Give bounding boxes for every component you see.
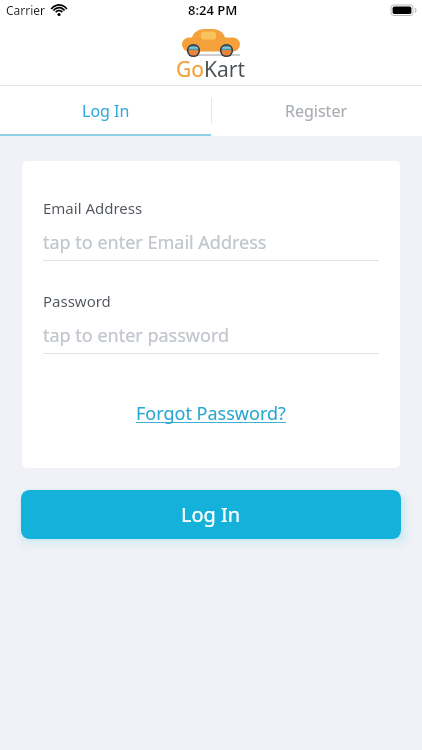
staticText: Log In [82,100,130,122]
button[interactable]: tap to enter password [43,323,230,348]
staticText: Carrier [6,2,46,18]
staticText: Email Address [43,198,143,218]
staticText: GoKart [176,55,246,82]
staticText: Register [285,100,348,122]
button[interactable]: tap to enter Email Address [43,230,267,255]
staticText: Log In [181,501,241,528]
button[interactable]: Register [211,86,422,136]
button[interactable]: Log In [0,86,211,136]
staticText: 8:24 PM [188,1,238,19]
staticText: Password [43,291,111,311]
button[interactable]: Log In [21,490,401,539]
button[interactable]: Forgot Password? [136,401,286,426]
